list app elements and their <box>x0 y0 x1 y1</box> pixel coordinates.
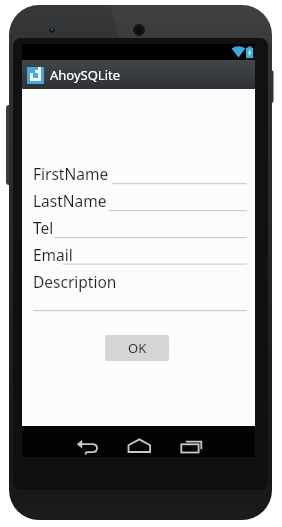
button[interactable]: OK <box>105 335 169 361</box>
button[interactable] <box>164 426 214 457</box>
staticText: LastName <box>33 190 107 211</box>
staticText: Email <box>33 244 73 265</box>
button[interactable] <box>112 165 247 185</box>
staticText: Tel <box>33 217 54 238</box>
staticText: OK <box>128 339 147 357</box>
staticText: FirstName <box>33 163 109 184</box>
button[interactable] <box>114 426 164 457</box>
staticText: AhoySQLite <box>50 66 121 84</box>
button[interactable] <box>63 246 247 266</box>
button[interactable] <box>54 219 247 239</box>
button[interactable] <box>109 192 247 212</box>
button[interactable] <box>33 289 247 311</box>
staticText: Description <box>33 271 117 292</box>
button[interactable] <box>64 426 114 457</box>
